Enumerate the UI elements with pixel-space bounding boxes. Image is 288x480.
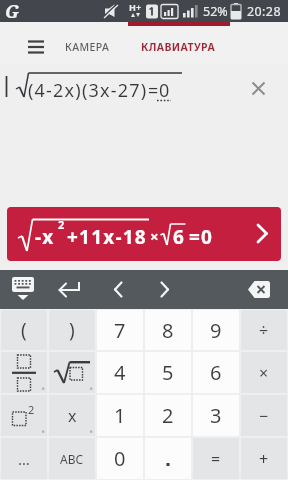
button[interactable]: + [241,438,287,479]
staticText: +11x-18 [67,224,147,250]
button[interactable]: … [1,438,47,479]
button[interactable]: -x [7,207,281,261]
staticText: 52% [203,3,228,20]
staticText: 0 [159,78,170,103]
staticText: ABC [60,451,84,467]
button[interactable]: 2 [1,395,47,436]
staticText: × [259,362,269,384]
button[interactable] [50,270,90,309]
button[interactable] [100,270,136,309]
button[interactable]: КАМЕРА [56,31,118,63]
staticText: 3 [210,402,222,429]
staticText: 7 [114,317,126,344]
button[interactable]: 4 [97,352,143,393]
button[interactable] [49,352,95,393]
button[interactable]: × [241,352,287,393]
button[interactable]: x [49,395,95,436]
staticText: = [189,224,202,250]
button[interactable] [4,270,44,309]
button[interactable]: 3 [193,395,239,436]
staticText: … [18,449,30,469]
staticText: 2 [58,217,65,232]
button[interactable]: = [193,438,239,479]
button[interactable]: 2 [145,395,191,436]
staticText: -x [35,224,55,250]
button[interactable]: КЛАВИАТУРА [132,31,224,63]
button[interactable] [20,32,52,56]
button[interactable]: ABC [49,438,95,479]
button[interactable]: ) [49,310,95,350]
staticText: = [211,448,221,470]
button[interactable]: 6 [193,352,239,393]
staticText: ÷ [259,319,269,341]
staticText: КАМЕРА [65,40,110,54]
staticText: x [68,405,77,427]
staticText: = [148,78,159,103]
button[interactable] [240,270,280,309]
button[interactable]: 1 [97,395,143,436]
staticText: 0 [114,445,126,472]
staticText: ( [21,317,27,343]
staticText: 20:28 [247,3,281,20]
button[interactable]: 7 [97,310,143,350]
staticText: 4 [114,359,126,386]
button[interactable]: ( [1,310,47,350]
staticText: 6 [173,224,186,250]
button[interactable]: 8 [145,310,191,350]
staticText: 9 [210,317,222,344]
button[interactable] [145,438,191,479]
staticText: 1 [114,402,126,429]
staticText: 6 [210,359,222,386]
button[interactable] [146,270,182,309]
staticText: × [150,226,159,246]
button[interactable]: 0 [97,438,143,479]
button[interactable]: 9 [193,310,239,350]
staticText: КЛАВИАТУРА [141,40,216,54]
staticText: 2 [28,402,35,417]
staticText: (4-2x)(3x-27) [28,78,148,103]
staticText: 2 [162,402,174,429]
staticText: − [259,405,269,427]
staticText: 5 [162,359,174,386]
staticText: 0 [201,224,214,250]
button[interactable]: − [241,395,287,436]
button[interactable] [1,352,47,393]
staticText: ) [69,317,75,343]
staticText: H+ [129,1,142,13]
staticText: + [259,448,269,470]
staticText: 8 [162,317,174,344]
button[interactable]: ÷ [241,310,287,350]
button[interactable]: 5 [145,352,191,393]
staticText: G [5,0,20,21]
